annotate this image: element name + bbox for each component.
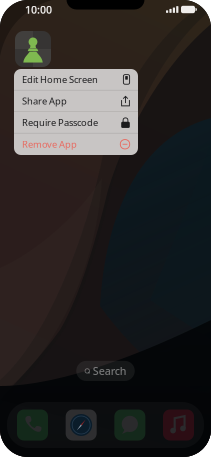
button[interactable]: Music: [163, 409, 194, 440]
button[interactable]: Edit Home Screen: [14, 69, 138, 90]
staticText: Search: [93, 364, 127, 378]
staticText: 10:00: [25, 2, 52, 17]
button[interactable]: Remove App: [14, 133, 138, 155]
staticText: Remove App: [22, 138, 77, 150]
button[interactable]: Share App: [14, 90, 138, 112]
staticText: Require Passcode: [22, 116, 98, 129]
button[interactable]: Search: [76, 361, 135, 381]
button[interactable]: Chess app icon: [15, 31, 51, 67]
button[interactable]: Messages: [114, 409, 145, 440]
staticText: Edit Home Screen: [22, 73, 98, 86]
button[interactable]: Phone: [17, 409, 48, 440]
staticText: Share App: [22, 95, 67, 107]
button[interactable]: Require Passcode: [14, 112, 138, 133]
button[interactable]: Safari: [66, 409, 97, 440]
